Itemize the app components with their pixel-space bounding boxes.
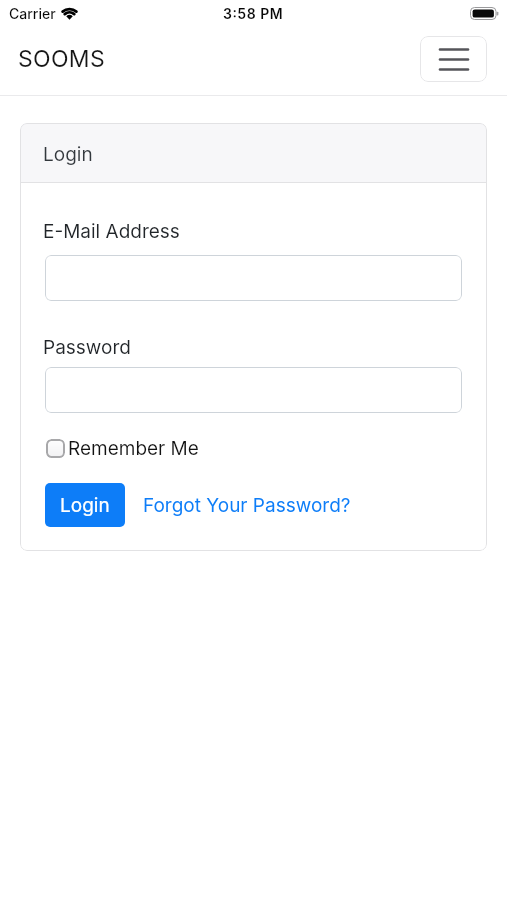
staticText: Carrier bbox=[9, 5, 56, 22]
button[interactable] bbox=[46, 439, 65, 458]
button[interactable] bbox=[45, 367, 462, 413]
staticText: Login bbox=[43, 143, 93, 166]
button[interactable] bbox=[45, 255, 462, 301]
staticText: Login bbox=[60, 494, 110, 517]
staticText: 3:58 PM bbox=[223, 5, 284, 22]
staticText: Remember Me bbox=[68, 437, 199, 460]
button[interactable]: Login bbox=[45, 483, 125, 527]
button[interactable]: Remember Me bbox=[45, 437, 199, 460]
staticText: E-Mail Address bbox=[43, 220, 180, 243]
staticText: Password bbox=[43, 336, 131, 359]
button[interactable]: Forgot Your Password? bbox=[143, 494, 351, 517]
staticText: SOOMS bbox=[18, 45, 105, 73]
button[interactable] bbox=[420, 36, 487, 82]
